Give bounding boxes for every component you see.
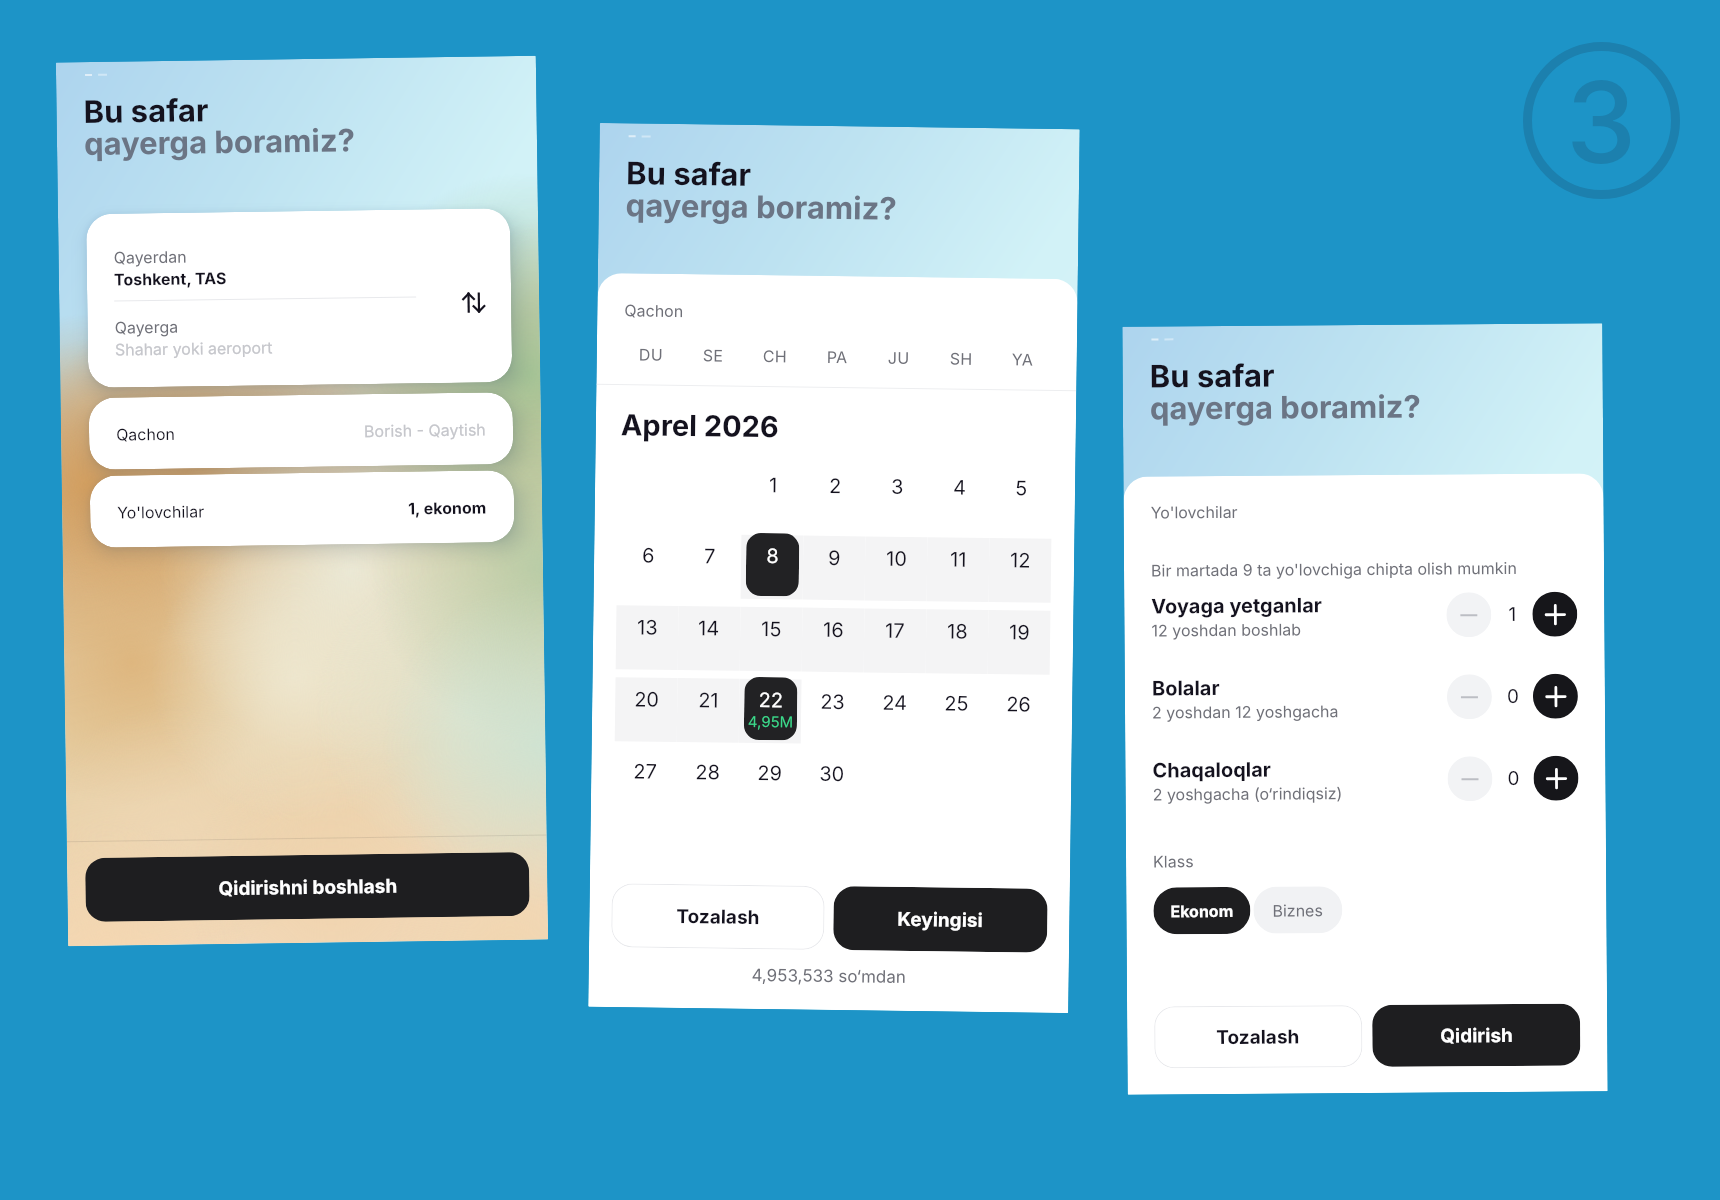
staticText: 19: [1009, 620, 1030, 645]
staticText: 8: [746, 544, 799, 569]
staticText: Voyaga yetganlar: [1151, 593, 1322, 618]
staticText: Qachon: [116, 424, 175, 444]
button[interactable]: 22: [744, 677, 797, 740]
staticText: 1: [769, 473, 778, 497]
staticText: Yo'lovchilar: [117, 501, 204, 522]
button[interactable]: Increase Chaqaloqlar: [1533, 755, 1579, 801]
staticText: Bu safar qayerga boramiz?: [625, 154, 897, 227]
staticText: Bolalar: [1152, 676, 1220, 700]
button[interactable]: Ekonom: [1153, 887, 1250, 934]
staticText: 20: [634, 687, 659, 712]
button[interactable]: Decrease Bolalar: [1447, 674, 1492, 719]
staticText: JU: [888, 348, 910, 367]
staticText: 1: [1508, 603, 1516, 626]
button[interactable]: Qidirish: [1372, 1003, 1580, 1067]
staticText: 25: [944, 691, 969, 716]
staticText: 18: [947, 619, 968, 644]
button[interactable]: Yo'lovchilar: [90, 470, 515, 548]
staticText: 2: [829, 474, 842, 498]
button[interactable]: Qidirishni boshlash: [85, 852, 530, 922]
staticText: Ekonom: [1170, 901, 1233, 920]
staticText: 1, ekonom: [408, 497, 487, 517]
button[interactable]: Tozalash: [1154, 1005, 1362, 1068]
staticText: Chaqaloqlar: [1152, 758, 1271, 782]
staticText: 4: [953, 476, 966, 500]
staticText: 15: [761, 617, 782, 641]
staticText: 7: [704, 544, 716, 568]
button[interactable]: Qayerdan: [86, 208, 512, 388]
staticText: DU: [639, 344, 664, 364]
staticText: Toshkent, TAS: [114, 268, 227, 289]
staticText: 24: [882, 691, 907, 715]
staticText: Qachon: [624, 300, 683, 320]
button[interactable]: Biznes: [1253, 886, 1342, 934]
staticText: Yo'lovchilar: [1151, 502, 1238, 521]
staticText: Bu safar qayerga boramiz?: [1149, 356, 1421, 426]
staticText: Aprel 2026: [621, 407, 779, 444]
staticText: Qayerga: [114, 317, 179, 337]
staticText: 11: [950, 547, 967, 572]
staticText: 17: [885, 619, 905, 643]
staticText: Qidirishni boshlash: [218, 875, 397, 900]
staticText: Tozalash: [676, 905, 761, 929]
staticText: PA: [827, 347, 848, 366]
staticText: 29: [757, 761, 782, 785]
staticText: Qidirish: [1440, 1024, 1513, 1047]
staticText: 5: [1015, 476, 1028, 501]
staticText: YA: [1012, 349, 1034, 369]
staticText: Biznes: [1272, 900, 1323, 920]
staticText: Tozalash: [1216, 1025, 1300, 1049]
staticText: Qayerdan: [113, 247, 187, 267]
staticText: 12: [1010, 548, 1031, 573]
staticText: 2 yoshgacha (o‘rindiqsiz): [1152, 783, 1343, 803]
staticText: SH: [950, 348, 973, 368]
staticText: 30: [819, 762, 844, 786]
button[interactable]: Keyingisi: [833, 886, 1048, 953]
staticText: 2 yoshdan 12 yoshgacha: [1152, 701, 1339, 721]
staticText: 26: [1006, 692, 1031, 717]
staticText: 28: [695, 760, 720, 784]
staticText: Klass: [1153, 851, 1194, 870]
staticText: Bu safar qayerga boramiz?: [83, 89, 355, 162]
button[interactable]: Swap origin and destination: [457, 286, 489, 319]
staticText: 10: [886, 547, 907, 571]
button[interactable]: Decrease Voyaga yetganlar: [1446, 592, 1491, 637]
button[interactable]: Tozalash: [611, 883, 825, 950]
staticText: 4,95M: [744, 712, 797, 730]
staticText: CH: [763, 346, 788, 365]
staticText: 13: [637, 615, 658, 640]
staticText: 9: [828, 546, 841, 570]
staticText: Bir martada 9 ta yo'lovchiga chipta olis…: [1151, 558, 1517, 579]
staticText: 14: [698, 616, 720, 640]
staticText: Borish - Qaytish: [364, 419, 486, 440]
staticText: Shahar yoki aeroport: [115, 337, 273, 359]
staticText: 6: [642, 543, 655, 568]
staticText: 0: [1507, 685, 1519, 708]
staticText: 0: [1507, 767, 1520, 790]
button[interactable]: Decrease Chaqaloqlar: [1447, 756, 1493, 801]
staticText: 3: [1566, 54, 1637, 190]
staticText: 22: [744, 688, 797, 712]
button[interactable]: Increase Voyaga yetganlar: [1532, 591, 1577, 637]
button[interactable]: Increase Bolalar: [1533, 673, 1578, 719]
button[interactable]: 8: [746, 533, 799, 597]
staticText: 16: [823, 618, 844, 642]
other: Step 3: [1523, 42, 1680, 199]
staticText: 21: [698, 688, 719, 712]
staticText: Keyingisi: [897, 908, 984, 932]
staticText: 12 yoshdan boshlab: [1151, 619, 1301, 639]
staticText: 3: [891, 475, 904, 499]
staticText: 4,953,533 so‘mdan: [588, 963, 1069, 990]
staticText: 27: [633, 759, 657, 784]
staticText: SE: [703, 345, 724, 365]
staticText: 23: [820, 690, 845, 714]
button[interactable]: Qachon: [88, 392, 513, 470]
